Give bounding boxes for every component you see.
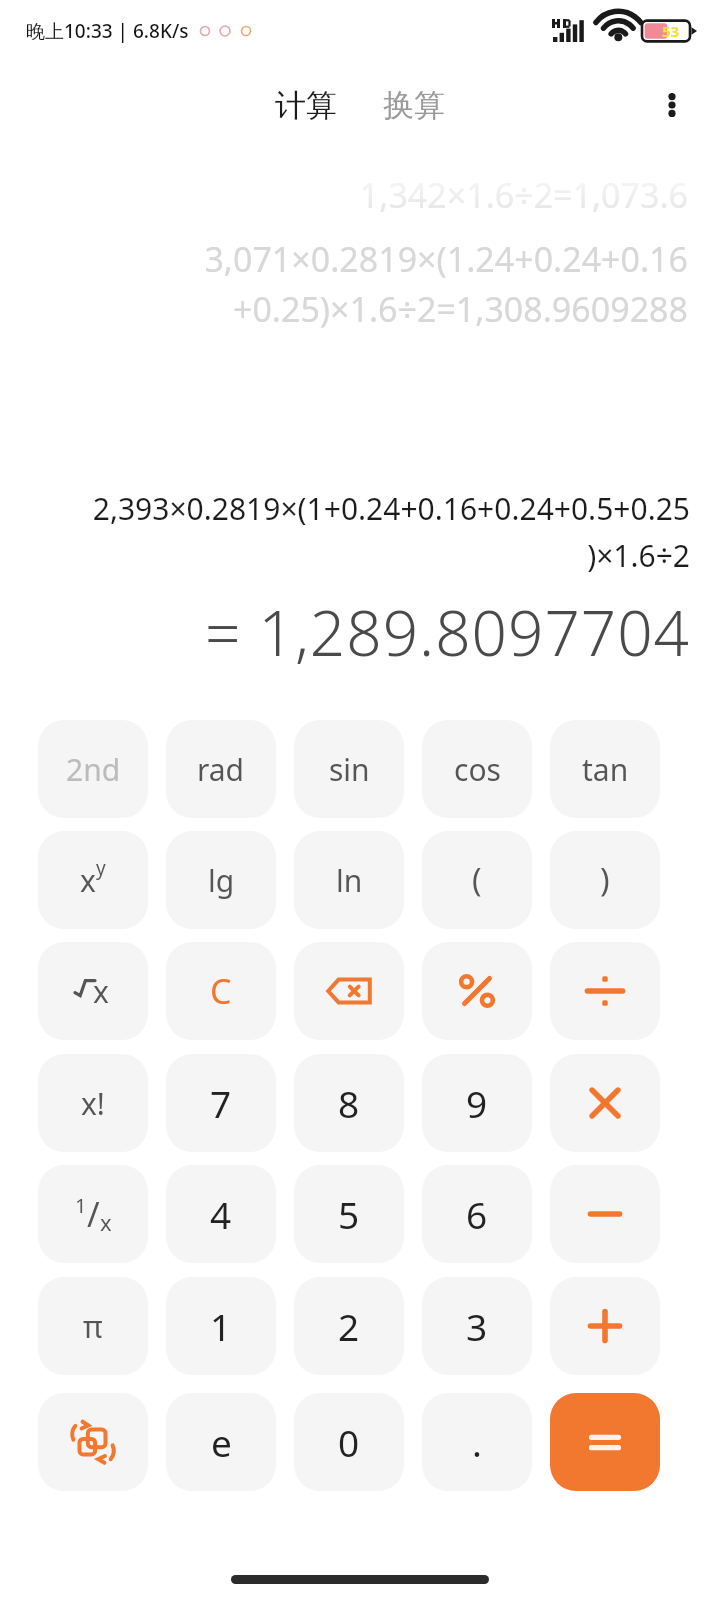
button[interactable]: Backspace (294, 942, 404, 1040)
staticText: tan (582, 749, 629, 790)
staticText: 3 (466, 1301, 488, 1351)
button[interactable]: 6 (422, 1165, 532, 1263)
button[interactable]: tan (550, 720, 660, 818)
staticText: 2nd (66, 749, 121, 790)
button[interactable]: 4 (166, 1165, 276, 1263)
staticText: 53 (662, 21, 680, 41)
staticText: sin (329, 749, 370, 790)
button[interactable]: 1 (38, 1165, 148, 1263)
staticText: 1 (75, 1192, 87, 1219)
staticText: e (211, 1417, 232, 1467)
button[interactable]: Multiply (550, 1054, 660, 1152)
button[interactable]: 3 (422, 1277, 532, 1375)
button[interactable]: x (38, 831, 148, 929)
button[interactable]: x! (38, 1054, 148, 1152)
staticText: x (100, 1207, 112, 1237)
staticText: x (80, 860, 96, 901)
button[interactable]: ) (550, 831, 660, 929)
staticText: ln (336, 860, 363, 901)
button[interactable]: 7 (166, 1054, 276, 1152)
staticText: x! (81, 1083, 105, 1124)
staticText: 9 (466, 1078, 488, 1128)
button[interactable]: Convert (38, 1393, 148, 1491)
button[interactable]: . (422, 1393, 532, 1491)
staticText: 0 (338, 1417, 360, 1467)
staticText: rad (197, 749, 245, 790)
button[interactable]: sin (294, 720, 404, 818)
staticText: = 1,289.8097704 (30, 590, 690, 674)
staticText: 2,393×0.2819×(1+0.24+0.16+0.24+0.5+0.25 … (30, 488, 690, 576)
staticText: 5 (338, 1189, 360, 1239)
button[interactable]: 2nd (38, 720, 148, 818)
button[interactable]: More options (640, 73, 704, 137)
button[interactable]: Divide (550, 942, 660, 1040)
button[interactable]: 0 (294, 1393, 404, 1491)
staticText: . (472, 1417, 482, 1467)
staticText: 7 (210, 1078, 232, 1128)
button[interactable]: cos (422, 720, 532, 818)
button[interactable]: Percent (422, 942, 532, 1040)
staticText: 2 (338, 1301, 360, 1351)
staticText: 1,342×1.6÷2=1,073.6 (359, 172, 688, 218)
staticText: cos (454, 749, 501, 790)
button[interactable]: rad (166, 720, 276, 818)
button[interactable]: 8 (294, 1054, 404, 1152)
staticText: / (87, 1191, 100, 1237)
button[interactable]: 换算 (375, 80, 453, 131)
staticText: 换算 (383, 86, 445, 125)
staticText: ( (472, 858, 482, 902)
button[interactable]: Minus (550, 1165, 660, 1263)
button[interactable]: ln (294, 831, 404, 929)
button[interactable]: π (38, 1277, 148, 1375)
staticText: 4 (210, 1189, 232, 1239)
button[interactable]: x (38, 942, 148, 1040)
button[interactable]: 9 (422, 1054, 532, 1152)
button[interactable]: C (166, 942, 276, 1040)
staticText: x (93, 971, 109, 1012)
staticText: 1 (210, 1301, 232, 1351)
button[interactable]: Plus (550, 1277, 660, 1375)
staticText: ) (600, 858, 610, 902)
staticText: C (210, 968, 232, 1014)
button[interactable]: 2 (294, 1277, 404, 1375)
staticText: lg (208, 860, 235, 901)
staticText: π (83, 1306, 103, 1347)
staticText: y (96, 855, 106, 881)
button[interactable]: ( (422, 831, 532, 929)
button[interactable]: 5 (294, 1165, 404, 1263)
staticText: 8 (338, 1078, 360, 1128)
button[interactable]: 计算 (267, 80, 345, 131)
staticText: 3,071×0.2819×(1.24+0.24+0.16 +0.25)×1.6÷… (32, 236, 688, 332)
staticText: 6 (466, 1189, 488, 1239)
button[interactable]: lg (166, 831, 276, 929)
staticText: 计算 (275, 86, 337, 125)
button[interactable]: 1 (166, 1277, 276, 1375)
staticText: 晚上10:33 | 6.8K/s (26, 18, 189, 44)
button[interactable]: Equals (550, 1393, 660, 1491)
button[interactable]: e (166, 1393, 276, 1491)
